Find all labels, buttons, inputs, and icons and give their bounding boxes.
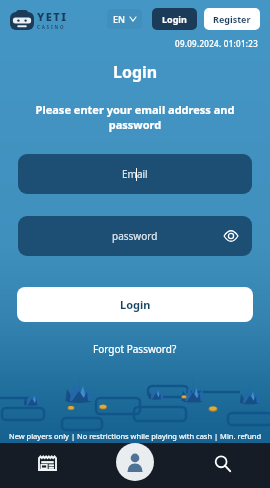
staticText: password [112, 229, 158, 243]
button[interactable]: Email [18, 154, 252, 194]
staticText: CASINO [37, 24, 66, 30]
button[interactable]: EN [107, 9, 142, 29]
button[interactable]: Login [152, 8, 197, 30]
staticText: New players only | No restrictions while… [0, 431, 270, 441]
button[interactable] [116, 443, 154, 481]
staticText: Email [122, 167, 148, 181]
button[interactable]: Forgot Password? [93, 342, 177, 356]
button[interactable]: YETI [10, 9, 68, 30]
staticText: Login [162, 13, 187, 25]
staticText: Login [113, 61, 158, 83]
button[interactable]: password [18, 216, 252, 256]
staticText: Login [120, 297, 151, 312]
staticText: Register [213, 13, 251, 25]
staticText: EN [113, 13, 125, 25]
button[interactable]: Login [17, 287, 253, 322]
staticText: YETI [37, 9, 68, 24]
staticText: Please enter your email address and pass… [0, 102, 270, 132]
staticText: 09.09.2024. 01:01:23 [175, 38, 259, 49]
button[interactable]: Register [204, 8, 260, 30]
button[interactable] [180, 443, 270, 488]
button[interactable] [0, 443, 90, 488]
